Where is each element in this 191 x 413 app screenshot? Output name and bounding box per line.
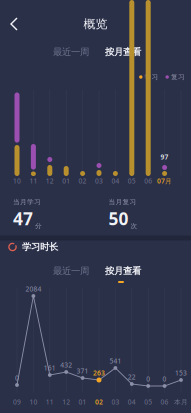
staticText: 2084 [25, 285, 41, 293]
button[interactable]: 最近一周 [53, 46, 89, 58]
staticText: 371 [77, 367, 89, 375]
staticText: 22 [128, 373, 136, 381]
staticText: 541 [109, 357, 121, 365]
staticText: 07月 [157, 177, 172, 185]
staticText: 最近一周 [53, 265, 89, 277]
staticText: 50 [108, 207, 128, 230]
staticText: 02 [95, 398, 103, 406]
button[interactable]: Back [1, 11, 27, 37]
staticText: 12 [46, 177, 54, 185]
staticText: 最近一周 [53, 46, 89, 58]
staticText: 263 [93, 369, 105, 377]
button[interactable]: 按月查看 [105, 265, 141, 277]
staticText: 06 [161, 398, 169, 406]
staticText: 06 [144, 177, 152, 185]
button[interactable]: 按月查看 [105, 46, 141, 58]
staticText: 01 [62, 177, 70, 185]
staticText: 161 [44, 364, 56, 372]
staticText: 04 [111, 177, 119, 185]
staticText: 10 [13, 177, 21, 185]
staticText: 按月查看 [105, 265, 141, 277]
staticText: 次 [130, 222, 137, 230]
staticText: 概览 [83, 17, 107, 31]
staticText: 0 [163, 375, 167, 383]
staticText: 03 [95, 177, 103, 185]
staticText: 按月查看 [105, 46, 141, 58]
staticText: 学习 [144, 73, 158, 81]
staticText: 03 [111, 398, 119, 406]
staticText: 分 [35, 222, 42, 230]
staticText: 0 [15, 374, 19, 382]
staticText: 01 [79, 398, 87, 406]
staticText: 12 [62, 398, 70, 406]
staticText: 10 [29, 398, 37, 406]
staticText: 复习 [171, 73, 185, 81]
staticText: 本月 [174, 398, 188, 406]
staticText: 09 [13, 398, 21, 406]
staticText: 0 [146, 375, 150, 383]
staticText: 432 [60, 361, 72, 369]
staticText: 05 [128, 177, 136, 185]
staticText: 11 [29, 177, 37, 185]
staticText: 当月复习 [108, 198, 136, 206]
staticText: 153 [175, 369, 187, 377]
staticText: 02 [79, 177, 87, 185]
staticText: 04 [128, 398, 136, 406]
staticText: 学习时长 [22, 241, 58, 253]
button[interactable]: 最近一周 [53, 265, 89, 277]
staticText: 47 [13, 207, 33, 230]
staticText: 当月学习 [13, 198, 41, 206]
staticText: 05 [144, 398, 152, 406]
staticText: 97 [161, 153, 169, 161]
staticText: 11 [46, 398, 54, 406]
